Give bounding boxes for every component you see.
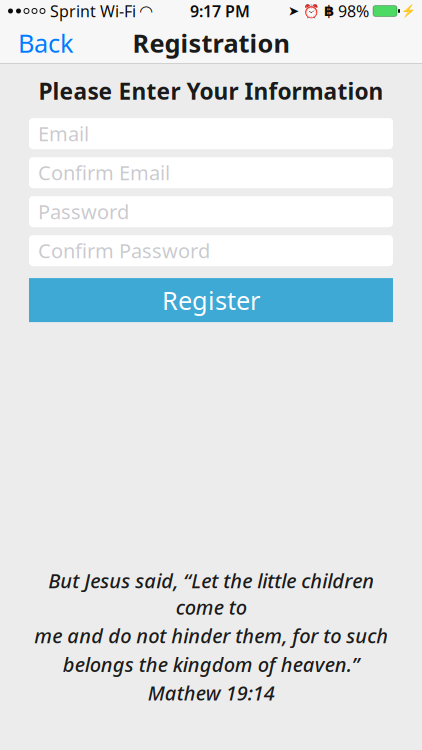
staticText: 9:17 PM [190,0,250,22]
staticText: Sprint Wi-Fi [50,0,136,22]
staticText: ฿ [324,3,334,19]
staticText: Back [18,26,74,60]
staticText: 98% [338,0,369,22]
staticText: Confirm Password [38,237,210,264]
staticText: ⏰ [303,3,320,19]
staticText: Password [38,198,129,225]
staticText: But Jesus said, “Let the little children… [48,567,374,620]
staticText: belongs the kingdom of heaven.” [62,651,359,677]
staticText: Mathew 19:14 [147,679,274,706]
staticText: Registration [132,26,289,60]
button[interactable]: Register [29,278,393,322]
staticText: me and do not hinder them, for to such [34,622,388,649]
button[interactable]: Back [0,20,74,66]
staticText: Register [162,283,260,317]
staticText: ➤ [288,3,299,18]
staticText: Confirm Email [38,159,170,186]
staticText: Email [38,120,89,147]
staticText: ⚡ [401,4,416,18]
staticText: Please Enter Your Information [38,76,383,106]
staticText: ◠ [140,2,152,20]
